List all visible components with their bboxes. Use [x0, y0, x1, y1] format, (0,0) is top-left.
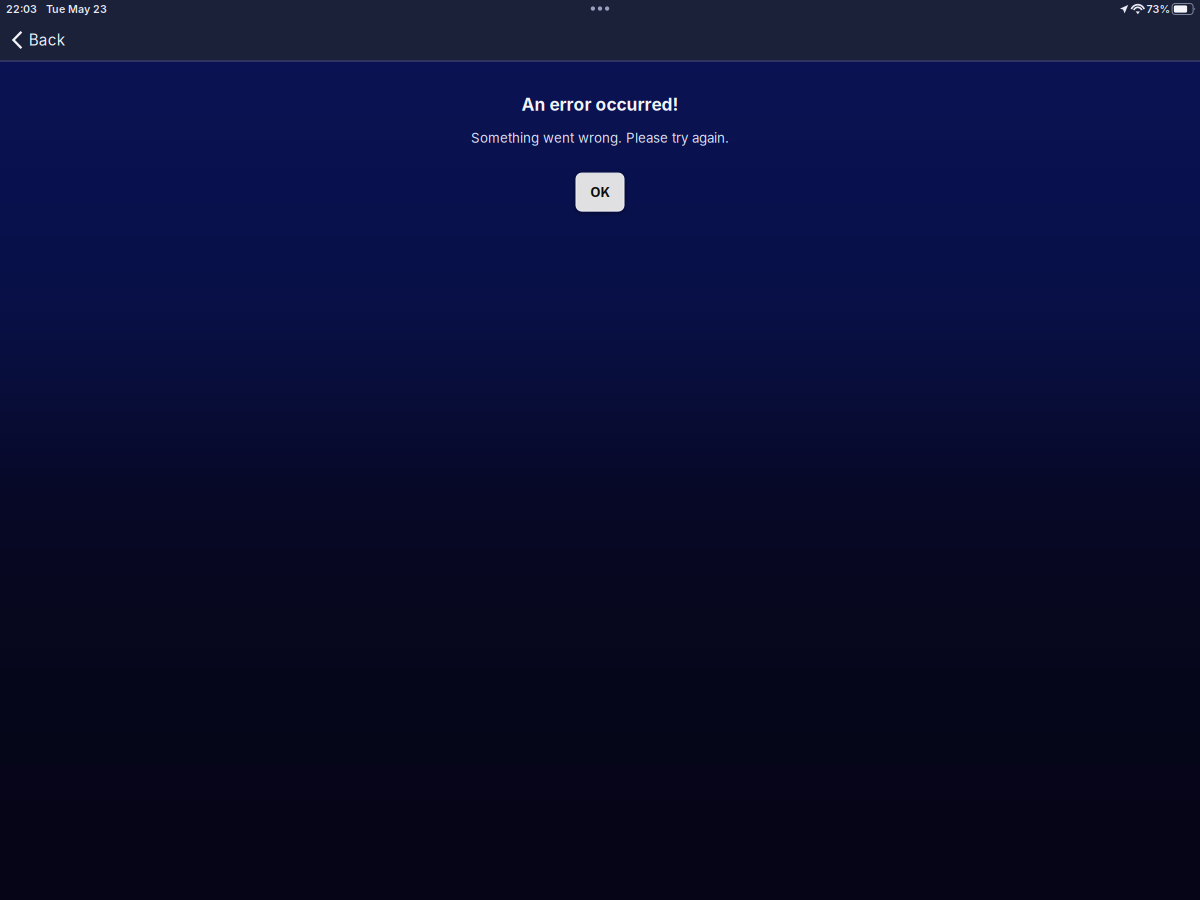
button[interactable]: OK: [576, 173, 624, 211]
staticText: 73%: [1146, 2, 1170, 15]
staticText: OK: [590, 181, 609, 202]
button[interactable]: Back: [0, 20, 79, 60]
staticText: Something went wrong. Please try again.: [471, 130, 729, 146]
staticText: Tue May 23: [46, 2, 107, 15]
staticText: 22:03: [6, 2, 37, 15]
staticText: An error occurred!: [521, 94, 678, 115]
staticText: Back: [29, 31, 65, 49]
